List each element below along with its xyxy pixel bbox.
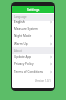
staticText: Night Mode bbox=[14, 34, 32, 38]
button[interactable]: Measure System bbox=[12, 26, 54, 32]
button[interactable]: Language bbox=[12, 14, 54, 19]
button[interactable]: About bbox=[12, 48, 54, 53]
button[interactable]: Warm Up bbox=[12, 41, 54, 47]
staticText: Update App bbox=[14, 55, 32, 59]
staticText: Privacy Policy bbox=[14, 62, 34, 66]
button[interactable]: Night Mode bbox=[12, 33, 54, 39]
button[interactable]: English bbox=[12, 19, 54, 25]
staticText: English bbox=[14, 20, 25, 24]
staticText: Version 1.0.1 bbox=[35, 79, 51, 83]
button[interactable]: Terms of Conditions bbox=[12, 69, 54, 75]
staticText: Measure System bbox=[14, 27, 38, 31]
staticText: Language bbox=[14, 15, 27, 19]
button[interactable]: Update App bbox=[12, 54, 54, 60]
staticText: Settings bbox=[27, 8, 40, 12]
staticText: Warm Up bbox=[14, 42, 28, 46]
button[interactable]: Privacy Policy bbox=[12, 61, 54, 67]
staticText: About bbox=[14, 49, 22, 53]
staticText: Terms of Conditions bbox=[14, 70, 44, 74]
